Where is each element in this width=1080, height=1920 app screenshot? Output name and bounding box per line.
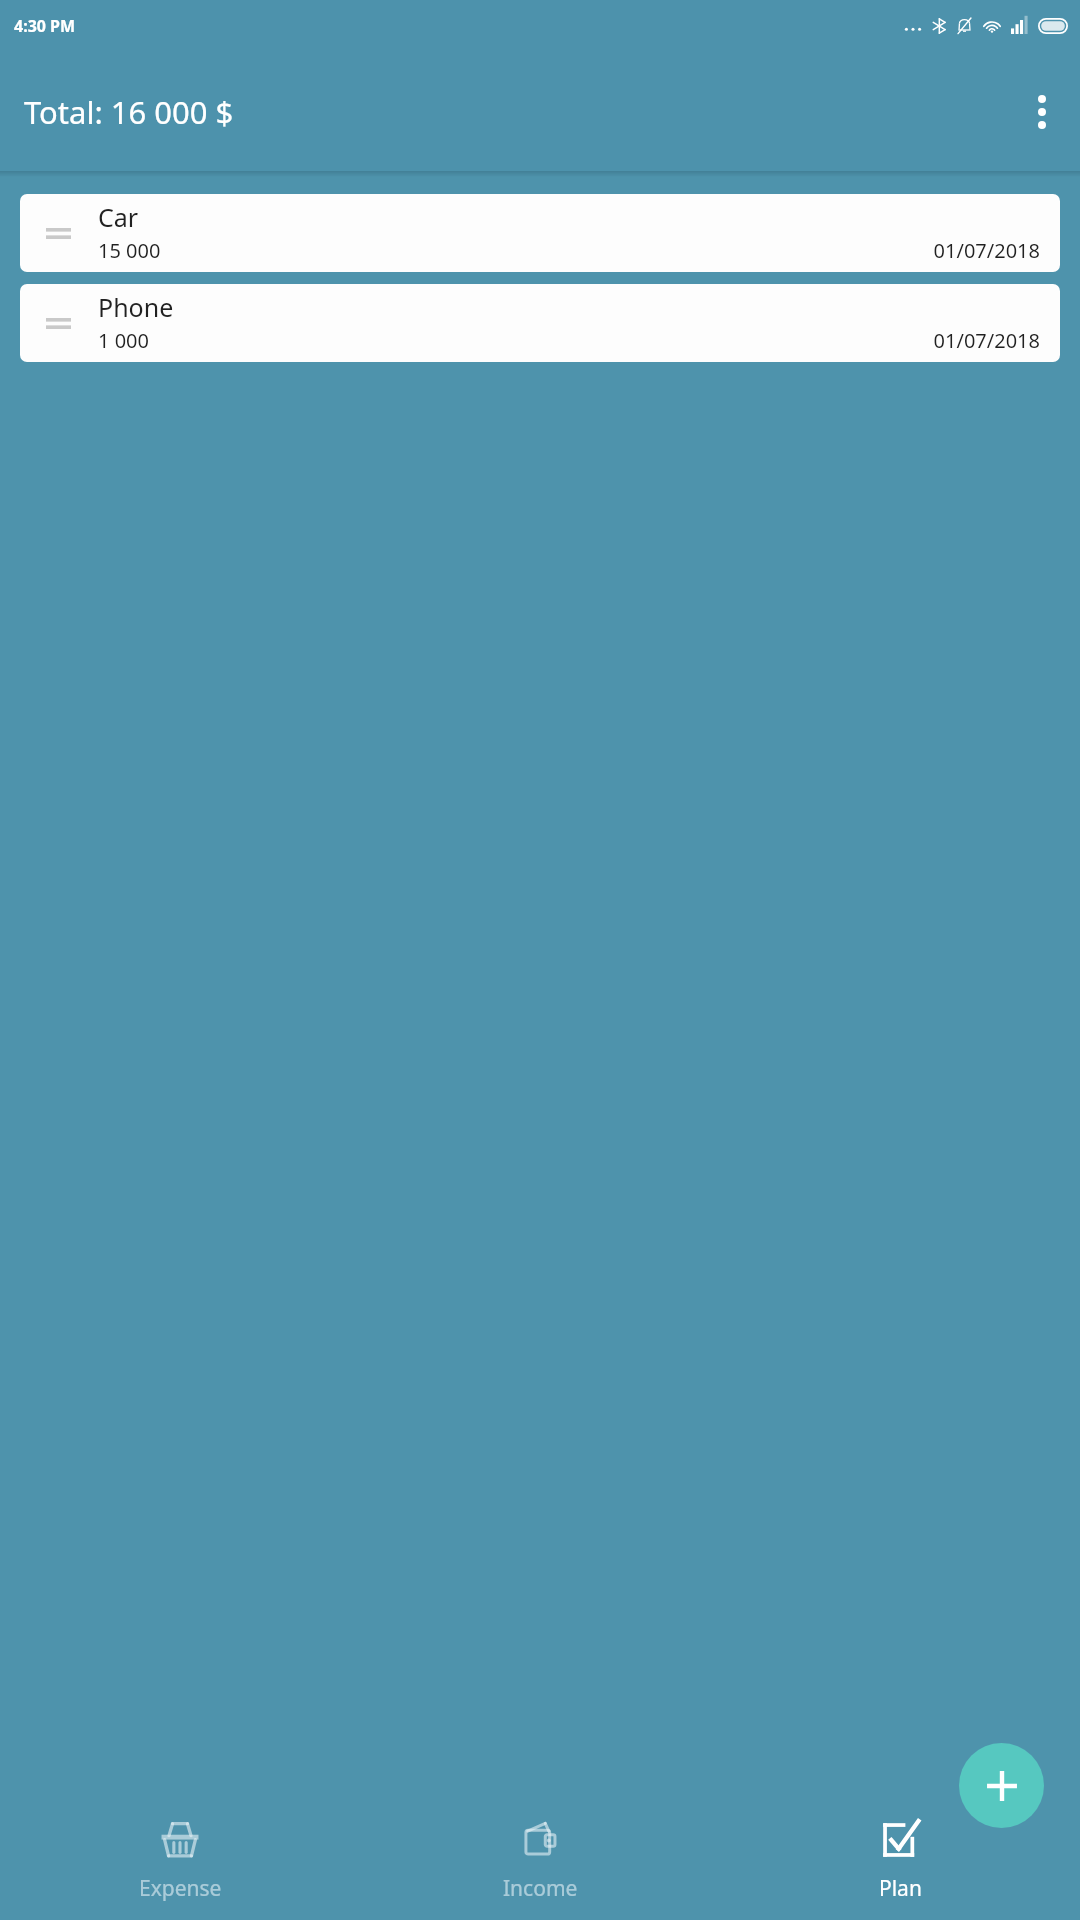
staticText: 01/07/2018 xyxy=(933,327,1040,354)
staticText: Phone xyxy=(98,290,174,324)
staticText: Car xyxy=(98,200,139,234)
staticText: 1 000 xyxy=(98,327,149,354)
staticText: Plan xyxy=(879,1874,922,1903)
button[interactable]: Income xyxy=(360,1802,720,1920)
staticText: 01/07/2018 xyxy=(933,237,1040,264)
staticText: Expense xyxy=(139,1874,222,1903)
button[interactable]: Add xyxy=(959,1743,1044,1828)
staticText: 15 000 xyxy=(98,237,161,264)
button[interactable]: Phone xyxy=(20,284,1060,362)
button[interactable]: Plan xyxy=(720,1802,1080,1920)
staticText: Total: 16 000 $ xyxy=(24,91,234,133)
button[interactable]: Car xyxy=(20,194,1060,272)
button[interactable]: Expense xyxy=(0,1802,360,1920)
staticText: 4:30 PM xyxy=(14,15,76,37)
staticText: Income xyxy=(503,1874,578,1903)
button[interactable]: More options xyxy=(1014,84,1070,140)
